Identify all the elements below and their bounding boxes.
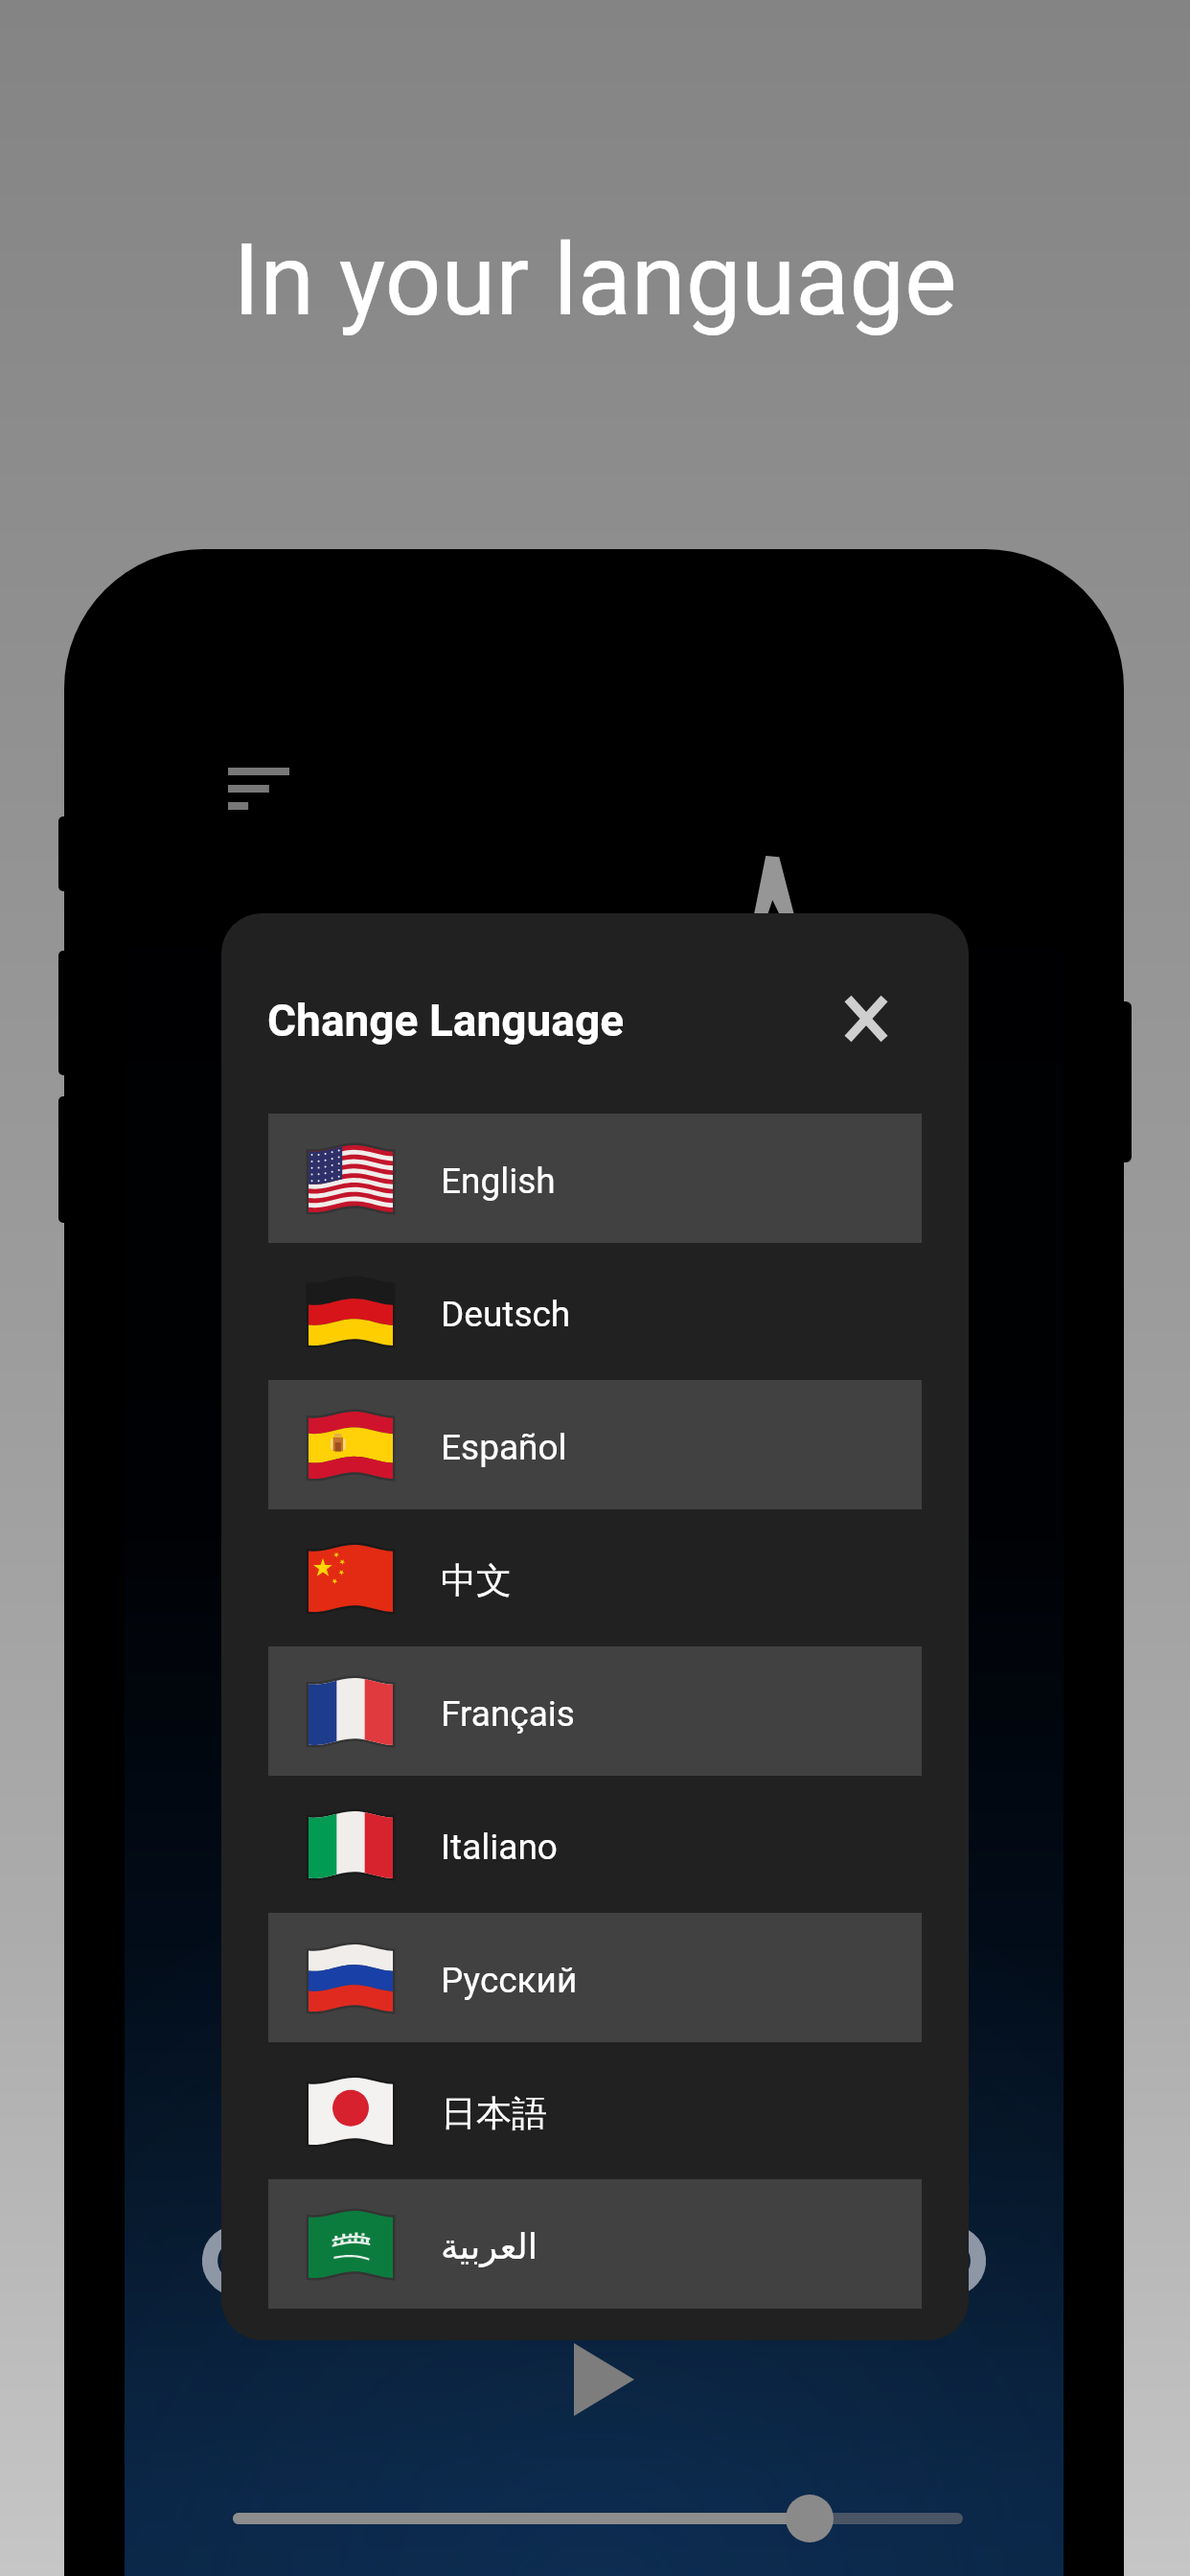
button[interactable]: English bbox=[221, 1112, 969, 1245]
staticText: Русский bbox=[441, 1960, 578, 2001]
staticText: Deutsch bbox=[441, 1294, 571, 1335]
button[interactable]: العربية bbox=[221, 2177, 969, 2311]
button[interactable]: Close bbox=[810, 962, 923, 1075]
button[interactable]: Italiano bbox=[221, 1778, 969, 1911]
button[interactable]: Sort bbox=[195, 724, 322, 851]
button[interactable]: 中文 bbox=[221, 1511, 969, 1644]
staticText: In your language bbox=[233, 222, 957, 338]
button[interactable]: 日本語 bbox=[221, 2044, 969, 2177]
staticText: Français bbox=[441, 1693, 575, 1735]
staticText: Italiano bbox=[441, 1827, 558, 1868]
button[interactable]: Fast forward bbox=[904, 2215, 996, 2307]
button[interactable]: Русский bbox=[221, 1911, 969, 2044]
button[interactable]: Deutsch bbox=[221, 1245, 969, 1378]
button[interactable]: Rewind bbox=[192, 2215, 284, 2307]
staticText: العربية bbox=[441, 2226, 538, 2267]
staticText: Change Language bbox=[267, 995, 625, 1046]
button[interactable]: Español bbox=[221, 1378, 969, 1511]
button[interactable]: Play bbox=[544, 2314, 663, 2445]
button[interactable]: Seek bar bbox=[233, 2485, 963, 2552]
staticText: English bbox=[441, 1161, 556, 1202]
staticText: 中文 bbox=[441, 1558, 512, 1603]
staticText: Español bbox=[441, 1427, 567, 1468]
button[interactable]: Français bbox=[221, 1644, 969, 1778]
staticText: 日本語 bbox=[441, 2091, 547, 2136]
